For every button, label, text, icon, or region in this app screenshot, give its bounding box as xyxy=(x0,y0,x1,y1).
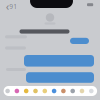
button[interactable]: App 4 xyxy=(0,0,100,100)
button[interactable]: Back xyxy=(0,0,100,100)
button[interactable]: App 1 xyxy=(0,0,100,100)
button[interactable]: App 2 xyxy=(0,0,100,100)
button[interactable]: App 10 xyxy=(0,0,100,100)
button[interactable]: App 9 xyxy=(0,0,100,100)
button[interactable]: App 6 xyxy=(0,0,100,100)
staticText: ‹ xyxy=(6,0,9,13)
button[interactable]: App 3 xyxy=(0,0,100,100)
staticText: 91 xyxy=(9,2,17,11)
button[interactable]: App 8 xyxy=(0,0,100,100)
button[interactable]: App 5 xyxy=(0,0,100,100)
button[interactable]: App 7 xyxy=(0,0,100,100)
